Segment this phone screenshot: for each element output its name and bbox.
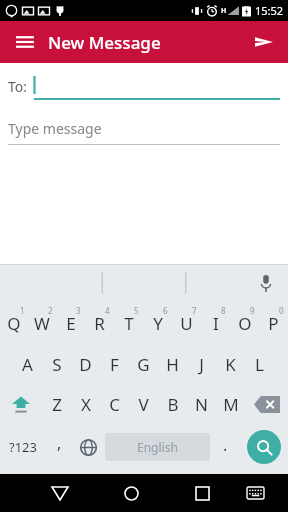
button[interactable]: Q: [0, 302, 28, 344]
staticText: .: [223, 434, 228, 456]
button[interactable]: ,: [46, 424, 73, 470]
staticText: N: [195, 393, 208, 416]
staticText: 3: [76, 305, 81, 316]
button[interactable]: O: [230, 302, 259, 344]
staticText: R: [94, 312, 105, 335]
button[interactable]: Change language: [73, 424, 103, 470]
button[interactable]: L: [245, 344, 274, 384]
staticText: T: [124, 312, 134, 335]
staticText: H: [221, 6, 227, 16]
button[interactable]: N: [187, 384, 216, 424]
staticText: C: [109, 393, 120, 416]
button[interactable]: Recent apps: [177, 474, 227, 512]
button[interactable]: S: [42, 344, 71, 384]
button[interactable]: Search: [247, 430, 281, 464]
button[interactable]: M: [216, 384, 245, 424]
button[interactable]: To:: [8, 75, 280, 100]
staticText: D: [79, 353, 92, 376]
button[interactable]: G: [129, 344, 158, 384]
staticText: J: [199, 353, 204, 376]
staticText: 2: [48, 305, 53, 316]
button[interactable]: C: [100, 384, 129, 424]
staticText: 7: [192, 305, 197, 316]
button[interactable]: Back: [35, 474, 85, 512]
staticText: New Message: [48, 31, 161, 54]
button[interactable]: F: [100, 344, 129, 384]
button[interactable]: I: [201, 302, 230, 344]
button[interactable]: Voice input: [252, 269, 280, 297]
staticText: 5: [134, 305, 139, 316]
button[interactable]: A: [13, 344, 42, 384]
staticText: ?123: [9, 438, 37, 456]
staticText: M: [223, 393, 239, 416]
staticText: B: [167, 393, 179, 416]
button[interactable]: D: [71, 344, 100, 384]
button[interactable]: X: [71, 384, 100, 424]
button[interactable]: V: [129, 384, 158, 424]
button[interactable]: ?123: [0, 424, 46, 470]
button[interactable]: English: [105, 433, 210, 461]
staticText: 6: [163, 305, 168, 316]
staticText: F: [110, 353, 119, 376]
staticText: L: [255, 353, 264, 376]
staticText: ,: [57, 432, 62, 454]
staticText: X: [81, 393, 91, 416]
staticText: V: [138, 393, 149, 416]
button[interactable]: K: [216, 344, 245, 384]
button[interactable]: .: [212, 424, 239, 470]
button[interactable]: H: [158, 344, 187, 384]
button[interactable]: Z: [42, 384, 71, 424]
button[interactable]: B: [158, 384, 187, 424]
button[interactable]: R: [85, 302, 114, 344]
staticText: 1: [20, 305, 25, 316]
staticText: 15:52: [255, 3, 284, 18]
staticText: 9: [250, 305, 255, 316]
button[interactable]: Type message: [8, 119, 280, 145]
staticText: H: [166, 353, 179, 376]
button[interactable]: Menu: [8, 25, 42, 59]
staticText: Type message: [8, 119, 102, 138]
staticText: O: [238, 312, 252, 335]
staticText: A: [22, 353, 33, 376]
staticText: G: [137, 353, 150, 376]
staticText: S: [52, 353, 62, 376]
button[interactable]: P: [259, 302, 288, 344]
button[interactable]: W: [28, 302, 56, 344]
staticText: Q: [7, 312, 21, 335]
staticText: 8: [221, 305, 226, 316]
button[interactable]: Hide keyboard: [234, 474, 277, 512]
staticText: W: [34, 312, 50, 335]
button[interactable]: Y: [143, 302, 172, 344]
staticText: Y: [153, 312, 163, 335]
staticText: I: [213, 312, 219, 335]
staticText: U: [180, 312, 193, 335]
button[interactable]: U: [172, 302, 201, 344]
button[interactable]: Send: [246, 24, 282, 60]
button[interactable]: Backspace: [245, 384, 288, 424]
button[interactable]: E: [56, 302, 85, 344]
staticText: E: [66, 312, 76, 335]
button[interactable]: T: [114, 302, 143, 344]
staticText: Z: [52, 393, 62, 416]
staticText: To:: [8, 77, 28, 96]
staticText: 4: [105, 305, 110, 316]
staticText: English: [137, 439, 178, 455]
button[interactable]: Home: [106, 474, 156, 512]
staticText: P: [268, 312, 279, 335]
button[interactable]: J: [187, 344, 216, 384]
staticText: 0: [279, 305, 284, 316]
button[interactable]: Shift: [0, 384, 42, 424]
staticText: K: [225, 353, 236, 376]
